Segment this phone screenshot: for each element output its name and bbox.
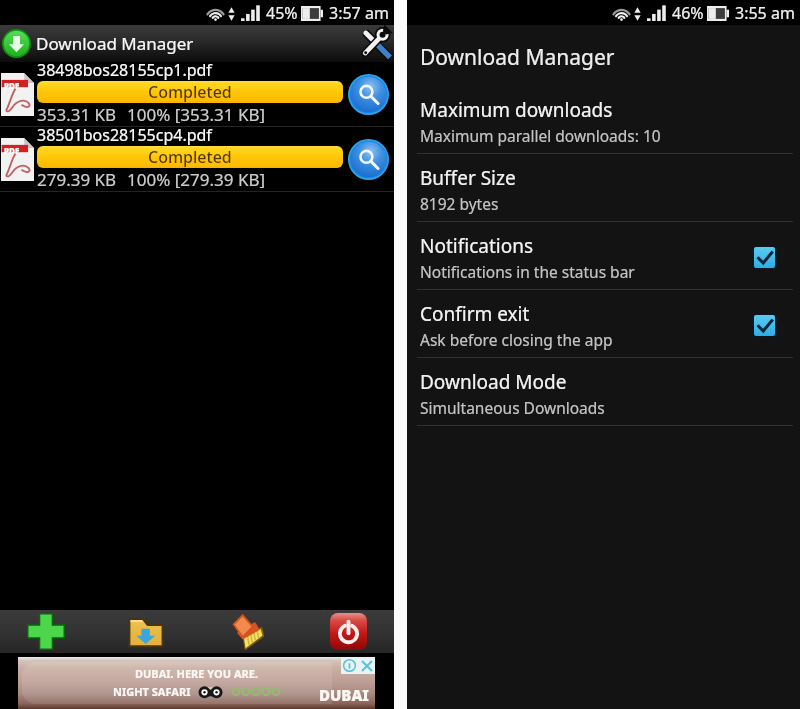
staticText: Download Manager bbox=[420, 43, 615, 72]
button[interactable]: Maximum downloads bbox=[407, 86, 800, 153]
staticText: Maximum downloads bbox=[420, 97, 613, 123]
staticText: Ask before closing the app bbox=[420, 329, 613, 350]
button[interactable]: Notifications bbox=[407, 222, 800, 289]
button[interactable]: Advertisement: Dubai. Here you are. bbox=[18, 657, 375, 709]
staticText: 38501bos28155cp4.pdf bbox=[37, 124, 212, 146]
staticText: Completed bbox=[148, 81, 232, 103]
button[interactable]: Buffer Size bbox=[407, 154, 800, 221]
staticText: Simultaneous Downloads bbox=[420, 397, 605, 418]
button[interactable]: Ad info bbox=[341, 657, 358, 674]
staticText: 45% bbox=[266, 2, 298, 24]
staticText: 8192 bytes bbox=[420, 193, 499, 214]
button[interactable]: Close ad bbox=[358, 657, 375, 674]
staticText: 353.31 KB bbox=[37, 103, 117, 123]
button[interactable]: Search bbox=[347, 73, 390, 116]
staticText: 46% bbox=[672, 2, 704, 24]
staticText: PDF bbox=[4, 145, 20, 156]
staticText: PDF bbox=[4, 80, 20, 91]
staticText: Notifications bbox=[420, 233, 534, 259]
staticText: 279.39 KB bbox=[37, 168, 117, 188]
button[interactable]: Confirm exit bbox=[407, 290, 800, 357]
button[interactable]: PDF bbox=[0, 127, 394, 191]
staticText: Maximum parallel downloads: 10 bbox=[420, 125, 661, 146]
button[interactable]: Clear list bbox=[224, 610, 270, 653]
staticText: DUBAI bbox=[319, 685, 369, 705]
staticText: 3:57 am bbox=[329, 2, 389, 24]
staticText: Confirm exit bbox=[420, 301, 530, 327]
staticText: Buffer Size bbox=[420, 165, 516, 191]
staticText: 100% [353.31 KB] bbox=[127, 103, 266, 123]
button[interactable]: Toggle Notifications bbox=[751, 244, 778, 271]
staticText: 3:55 am bbox=[735, 2, 795, 24]
staticText: NIGHT SAFARI bbox=[113, 684, 191, 699]
staticText: 38498bos28155cp1.pdf bbox=[37, 59, 212, 81]
staticText: Download Mode bbox=[420, 369, 567, 395]
button[interactable]: Toggle Confirm exit bbox=[751, 312, 778, 339]
staticText: Completed bbox=[148, 146, 232, 168]
staticText: Notifications in the status bar bbox=[420, 261, 635, 282]
button[interactable]: Exit bbox=[325, 610, 371, 653]
button[interactable]: Add download bbox=[23, 610, 69, 653]
button[interactable]: Settings bbox=[358, 27, 391, 60]
button[interactable]: Search bbox=[347, 138, 390, 181]
staticText: DUBAI. HERE YOU ARE. bbox=[135, 666, 258, 681]
button[interactable]: Download Mode bbox=[407, 358, 800, 425]
button[interactable]: Downloads folder bbox=[123, 610, 169, 653]
button[interactable]: PDF bbox=[0, 62, 394, 126]
staticText: 100% [279.39 KB] bbox=[127, 168, 266, 188]
staticText: Download Manager bbox=[36, 32, 194, 55]
